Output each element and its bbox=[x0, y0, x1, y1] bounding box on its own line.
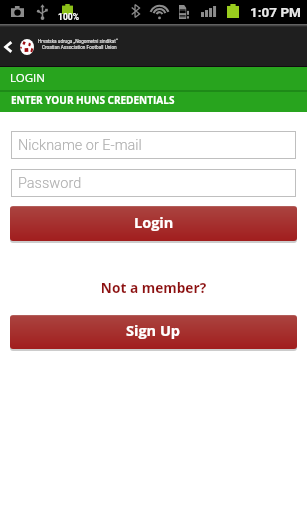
staticText: 1:07 PM bbox=[250, 4, 301, 20]
button[interactable]: Sign Up bbox=[10, 315, 297, 349]
staticText: LOGIN bbox=[10, 70, 45, 86]
staticText: Hrvatska udruga „Nogometni sindikat“ bbox=[38, 39, 118, 45]
button[interactable]: Navigate up bbox=[0, 27, 18, 66]
button[interactable]: Password bbox=[11, 169, 296, 197]
staticText: Sign Up bbox=[126, 321, 181, 341]
staticText: Password bbox=[18, 175, 82, 192]
staticText: ENTER YOUR HUNS CREDENTIALS bbox=[11, 93, 175, 107]
staticText: Not a member? bbox=[0, 278, 307, 297]
button[interactable]: Nickname or E-mail bbox=[11, 131, 296, 159]
staticText: 100% bbox=[58, 12, 79, 22]
staticText: Login bbox=[134, 213, 174, 233]
button[interactable]: Login bbox=[10, 206, 297, 241]
staticText: Croatian Association Football Union bbox=[42, 45, 117, 51]
staticText: Nickname or E-mail bbox=[18, 137, 142, 154]
